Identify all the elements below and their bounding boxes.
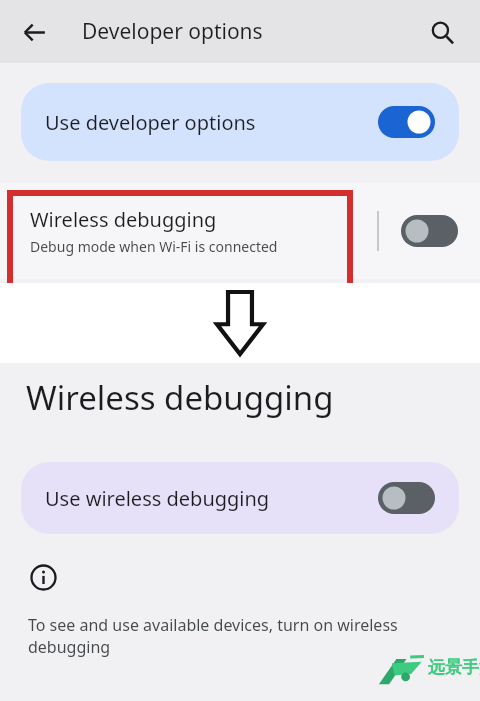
button[interactable]: Wireless debugging toggle: [401, 215, 458, 247]
staticText: Wireless debugging: [26, 375, 334, 420]
button[interactable]: Use wireless debugging: [21, 462, 459, 534]
button[interactable]: Information: [28, 562, 58, 592]
staticText: Wireless debugging: [30, 206, 217, 233]
staticText: Developer options: [82, 17, 263, 46]
staticText: Use wireless debugging: [45, 485, 270, 512]
staticText: Debug mode when Wi-Fi is connected: [30, 237, 278, 256]
button[interactable]: Use developer options toggle: [378, 106, 435, 138]
staticText: Use developer options: [45, 109, 256, 136]
button[interactable]: Wireless debugging: [0, 183, 480, 279]
staticText: 远景手游网: [428, 657, 480, 678]
button[interactable]: Use wireless debugging toggle: [378, 482, 435, 514]
staticText: To see and use available devices, turn o…: [28, 614, 398, 658]
button[interactable]: Search: [420, 10, 464, 54]
button[interactable]: Use developer options: [21, 83, 459, 161]
button[interactable]: Back: [12, 10, 56, 54]
